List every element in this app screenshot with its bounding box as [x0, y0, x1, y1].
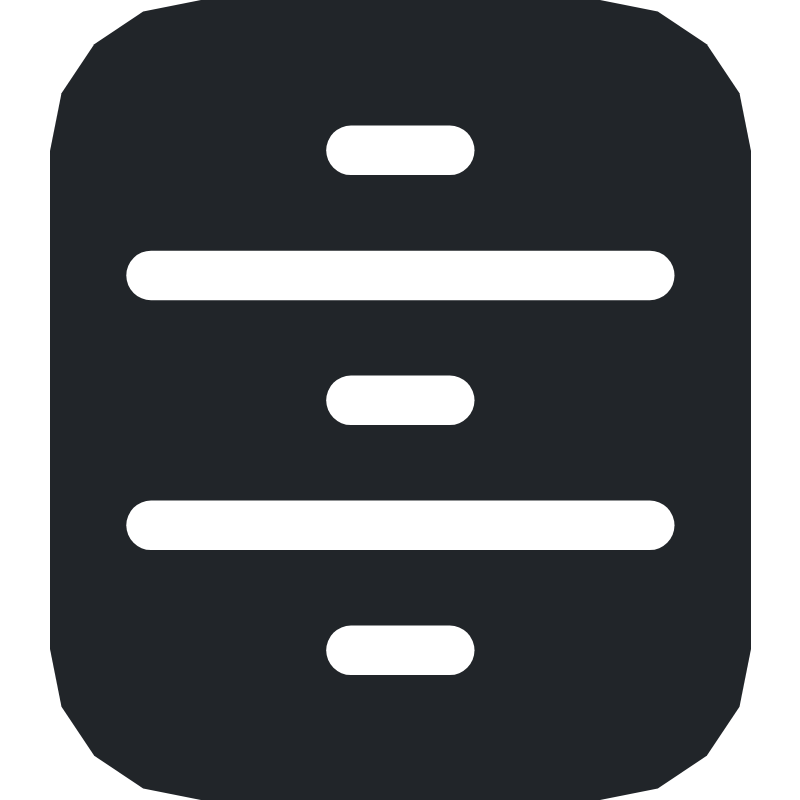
button[interactable]: Reading list document	[0, 0, 800, 800]
